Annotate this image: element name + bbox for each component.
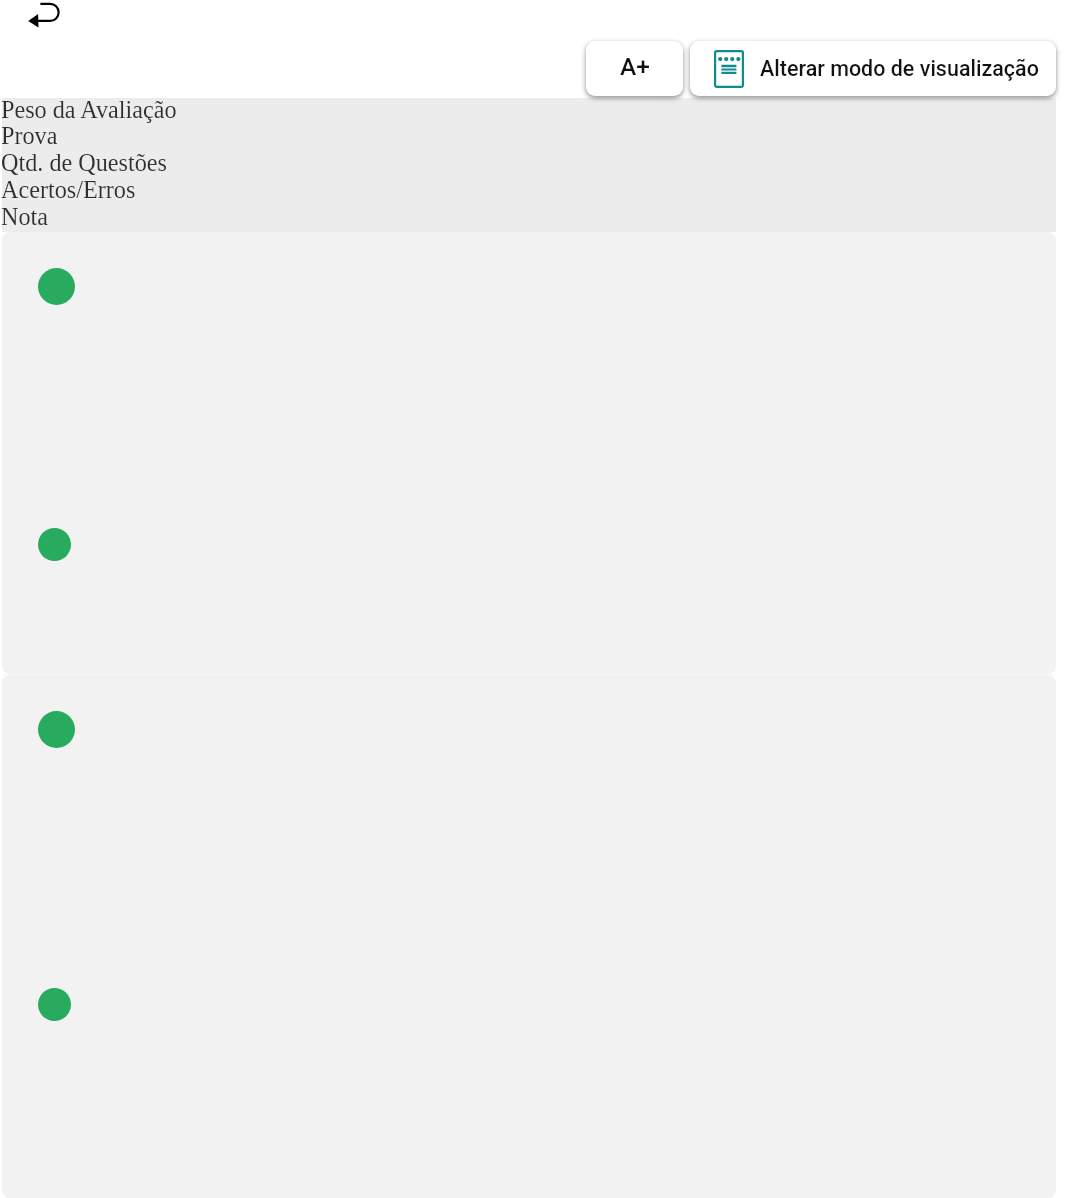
staticText: Peso da Avaliação Prova Qtd. de Questões… [1,96,177,230]
button[interactable] [2,675,1056,1198]
button[interactable]: A+ [586,41,683,96]
button[interactable] [2,232,1056,674]
staticText: A+ [620,52,650,81]
staticText: Alterar modo de visualização [760,56,1039,81]
button[interactable]: Voltar [19,0,71,48]
button[interactable]: Alterar modo de visualização [690,41,1056,96]
